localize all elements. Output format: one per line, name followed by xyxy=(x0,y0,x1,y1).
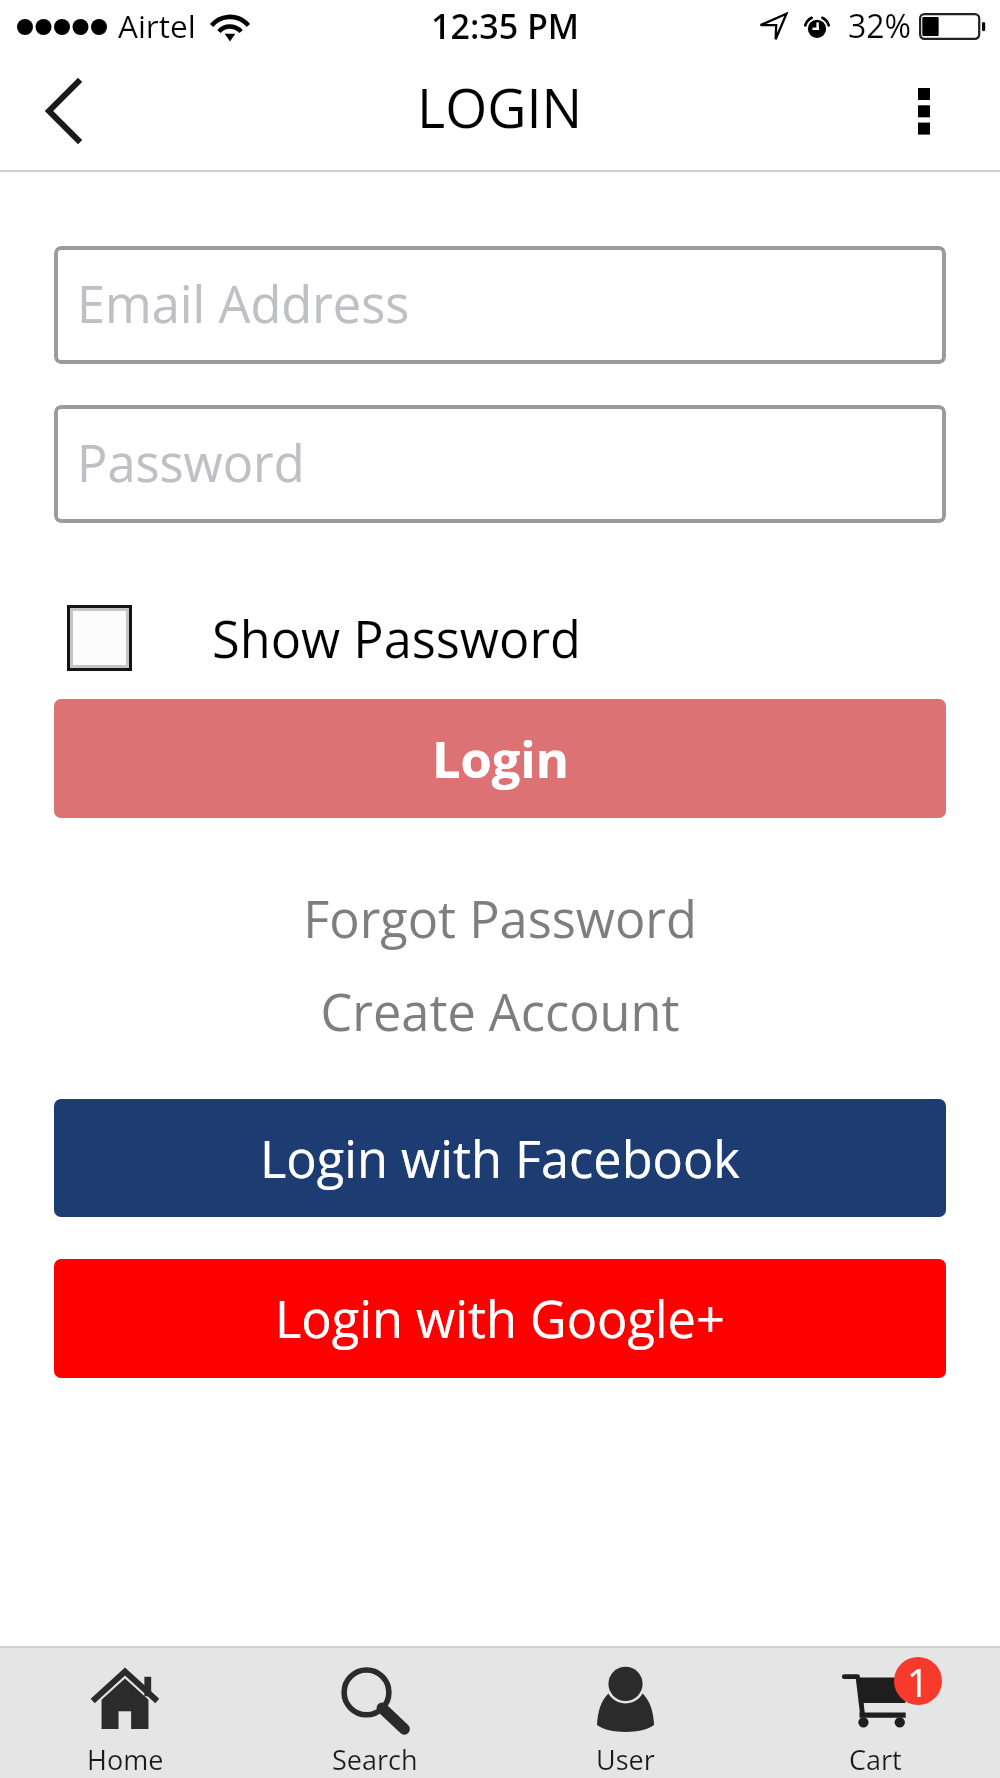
button[interactable]: Login xyxy=(54,699,946,818)
staticText: User xyxy=(596,1741,655,1778)
button[interactable]: More options xyxy=(880,66,970,156)
button[interactable]: Forgot Password xyxy=(0,884,1000,953)
staticText: Email Address xyxy=(77,269,410,338)
button[interactable]: Email Address xyxy=(54,246,946,364)
button[interactable]: Password xyxy=(54,405,946,523)
staticText: Login xyxy=(432,724,569,793)
staticText: Airtel xyxy=(118,4,196,47)
staticText: 1 xyxy=(907,1657,929,1704)
staticText: LOGIN xyxy=(417,70,583,144)
staticText: Search xyxy=(332,1741,418,1778)
staticText: Login with Facebook xyxy=(260,1124,740,1193)
staticText: Home xyxy=(87,1741,164,1778)
button[interactable]: Search xyxy=(250,1648,500,1778)
button[interactable]: Login with Google+ xyxy=(54,1259,946,1378)
button[interactable]: User xyxy=(500,1648,750,1778)
staticText: Password xyxy=(77,428,305,497)
staticText: 32% xyxy=(848,4,912,48)
button[interactable]: Show Password xyxy=(60,597,581,679)
staticText: Cart xyxy=(849,1741,902,1778)
staticText: 12:35 PM xyxy=(431,3,580,49)
button[interactable]: Back xyxy=(12,66,112,156)
button[interactable]: Home xyxy=(0,1648,250,1778)
button[interactable]: 1 xyxy=(750,1648,1000,1778)
staticText: Login with Google+ xyxy=(275,1284,725,1353)
staticText: Show Password xyxy=(212,604,581,673)
button[interactable]: Login with Facebook xyxy=(54,1099,946,1217)
button[interactable]: Create Account xyxy=(0,977,1000,1046)
